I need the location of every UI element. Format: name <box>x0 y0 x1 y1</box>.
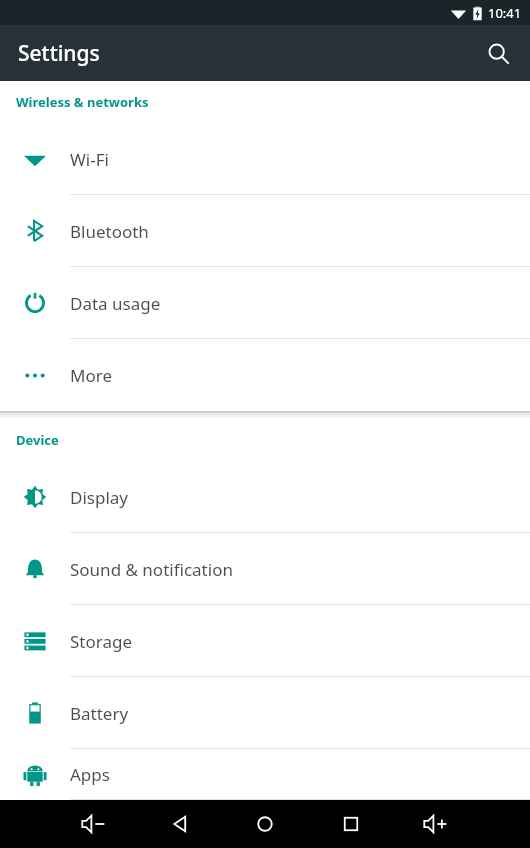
staticText: Sound & notification <box>70 558 233 581</box>
button[interactable]: Battery <box>0 677 530 749</box>
button[interactable]: Recents <box>327 800 375 848</box>
staticText: Display <box>70 486 128 509</box>
button[interactable]: Data usage <box>0 267 530 339</box>
button[interactable]: Back <box>156 800 204 848</box>
staticText: Storage <box>70 630 133 653</box>
button[interactable]: Search <box>474 29 522 77</box>
staticText: Apps <box>70 763 110 786</box>
button[interactable]: Volume down <box>70 800 118 848</box>
staticText: Settings <box>18 39 100 68</box>
button[interactable]: Wi-Fi <box>0 123 530 195</box>
staticText: More <box>70 364 112 387</box>
button[interactable]: Display <box>0 461 530 533</box>
button[interactable]: Bluetooth <box>0 195 530 267</box>
button[interactable]: More <box>0 339 530 411</box>
staticText: Bluetooth <box>70 220 149 243</box>
staticText: Battery <box>70 702 129 725</box>
staticText: 10:41 <box>488 4 522 22</box>
button[interactable]: Storage <box>0 605 530 677</box>
staticText: Wi-Fi <box>70 148 109 171</box>
staticText: Data usage <box>70 292 161 315</box>
button[interactable]: Home <box>241 800 289 848</box>
staticText: Wireless & networks <box>16 93 149 111</box>
button[interactable]: Apps <box>0 749 530 800</box>
button[interactable]: Sound & notification <box>0 533 530 605</box>
staticText: Device <box>16 431 59 449</box>
button[interactable]: Volume up <box>412 800 460 848</box>
